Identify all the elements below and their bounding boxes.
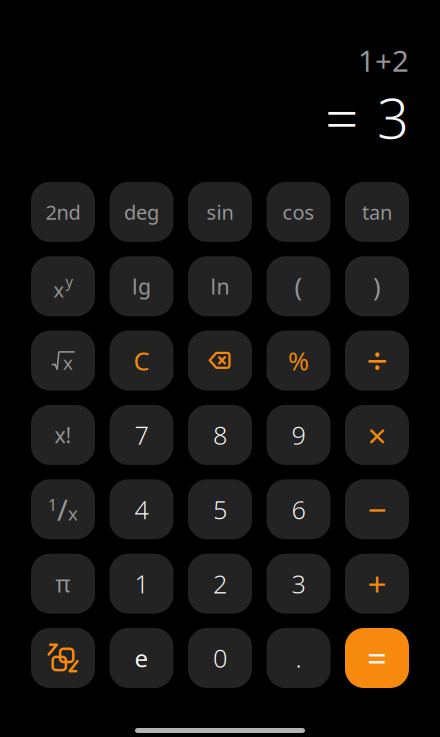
button[interactable]: . xyxy=(266,628,330,688)
button[interactable]: ( xyxy=(266,256,330,316)
staticText: 0 xyxy=(213,641,227,675)
button[interactable]: = xyxy=(345,628,409,688)
button[interactable]: 8 xyxy=(188,405,252,465)
button[interactable]: % xyxy=(266,331,330,391)
button[interactable]: 5 xyxy=(188,479,252,539)
button[interactable]: 1 xyxy=(31,479,95,539)
staticText: 3 xyxy=(291,567,305,600)
staticText: sin xyxy=(206,199,233,225)
button[interactable]: tan xyxy=(345,182,409,242)
staticText: x xyxy=(63,350,73,375)
staticText: C xyxy=(133,344,149,377)
staticText: ln xyxy=(210,272,229,300)
staticText: e xyxy=(134,642,148,674)
button[interactable]: sin xyxy=(188,182,252,242)
button[interactable]: deg xyxy=(109,182,173,242)
button[interactable]: 6 xyxy=(266,479,330,539)
staticText: + xyxy=(367,561,386,606)
staticText: deg xyxy=(124,199,159,225)
staticText: 2 xyxy=(213,567,227,600)
staticText: 5 xyxy=(213,492,227,526)
button[interactable]: π xyxy=(31,554,95,614)
button[interactable]: 4 xyxy=(109,479,173,539)
button[interactable]: Square root xyxy=(31,331,95,391)
button[interactable]: ÷ xyxy=(345,331,409,391)
staticText: 2nd xyxy=(45,199,80,225)
staticText: tan xyxy=(362,199,392,225)
button[interactable]: ln xyxy=(188,256,252,316)
button[interactable]: 1 xyxy=(109,554,173,614)
staticText: % xyxy=(288,344,309,377)
staticText: 7 xyxy=(134,418,148,452)
staticText: 3 xyxy=(377,80,409,154)
staticText: 6 xyxy=(291,492,305,526)
button[interactable]: + xyxy=(345,554,409,614)
staticText: 1 xyxy=(134,567,148,600)
button[interactable]: e xyxy=(109,628,173,688)
staticText: 1 xyxy=(48,494,57,515)
button[interactable]: 2 xyxy=(188,554,252,614)
button[interactable]: × xyxy=(345,405,409,465)
staticText: ( xyxy=(294,269,302,303)
button[interactable]: Delete xyxy=(188,331,252,391)
staticText: x xyxy=(68,501,78,526)
button[interactable]: ) xyxy=(345,256,409,316)
button[interactable]: cos xyxy=(266,182,330,242)
staticText: 8 xyxy=(213,418,227,452)
button[interactable]: C xyxy=(109,331,173,391)
staticText: = xyxy=(367,635,387,681)
staticText: x xyxy=(53,276,64,303)
staticText: / xyxy=(57,490,68,529)
staticText: x! xyxy=(54,421,71,449)
button[interactable]: x! xyxy=(31,405,95,465)
staticText: 1+2 xyxy=(358,41,409,80)
staticText: = xyxy=(325,78,358,156)
button[interactable]: x xyxy=(31,256,95,316)
staticText: . xyxy=(295,641,301,675)
staticText: × xyxy=(367,413,386,457)
staticText: 4 xyxy=(134,492,148,526)
button[interactable]: 7 xyxy=(109,405,173,465)
button[interactable]: 2nd xyxy=(31,182,95,242)
staticText: ÷ xyxy=(366,336,387,385)
button[interactable]: 0 xyxy=(188,628,252,688)
button[interactable]: − xyxy=(345,479,409,539)
staticText: − xyxy=(367,487,386,531)
button[interactable]: lg xyxy=(109,256,173,316)
staticText: lg xyxy=(132,272,151,300)
button[interactable]: Convert xyxy=(31,628,95,688)
button[interactable]: 9 xyxy=(266,405,330,465)
button[interactable]: 3 xyxy=(266,554,330,614)
staticText: ) xyxy=(373,269,381,303)
staticText: y xyxy=(65,271,72,291)
staticText: 9 xyxy=(291,418,305,452)
staticText: π xyxy=(55,569,70,599)
staticText: cos xyxy=(282,199,314,225)
